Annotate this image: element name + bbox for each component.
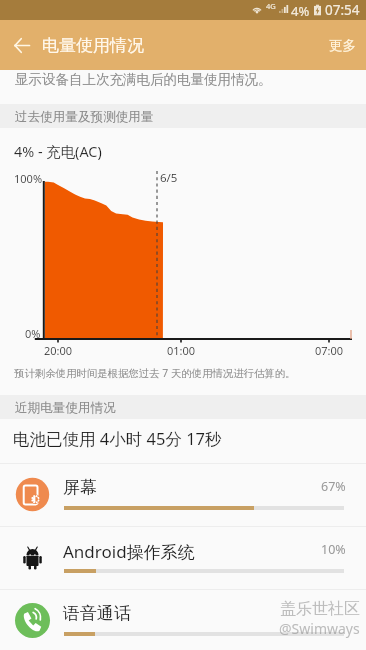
staticText: 4% (291, 2, 310, 20)
staticText: 4% - 充电(AC) (14, 142, 102, 162)
staticText: 电量使用情况 (42, 35, 144, 56)
staticText: 电池已使用 4小时 45分 17秒 (13, 427, 222, 450)
staticText: 100% (14, 171, 43, 186)
button[interactable]: 屏幕 (0, 463, 366, 526)
staticText: 10% (321, 541, 346, 558)
staticText: 67% (321, 478, 346, 495)
staticText: 显示设备自上次充满电后的电量使用情况。 (15, 71, 272, 88)
button[interactable]: 语音通话 (0, 589, 366, 650)
staticText: 盖乐世社区 (280, 599, 360, 619)
staticText: 20:00 (44, 343, 73, 358)
staticText: 07:54 (325, 1, 360, 19)
staticText: 预计剩余使用时间是根据您过去 7 天的使用情况进行估算的。 (14, 366, 296, 380)
staticText: 屏幕 (63, 477, 97, 498)
staticText: 01:00 (167, 343, 196, 358)
staticText: 语音通话 (63, 603, 131, 624)
staticText: 4G (266, 1, 276, 11)
button[interactable]: 更多 (319, 28, 366, 63)
button[interactable]: Back (4, 27, 40, 63)
button[interactable]: Android操作系统 (0, 526, 366, 589)
staticText: 近期电量使用情况 (15, 400, 116, 416)
staticText: 过去使用量及预测使用量 (15, 109, 154, 125)
staticText: Android操作系统 (63, 540, 195, 563)
staticText: 07:00 (315, 343, 344, 358)
staticText: 0% (25, 326, 41, 341)
staticText: 6/5 (160, 170, 178, 186)
staticText: 更多 (329, 37, 356, 54)
staticText: @Swimways (279, 619, 360, 638)
